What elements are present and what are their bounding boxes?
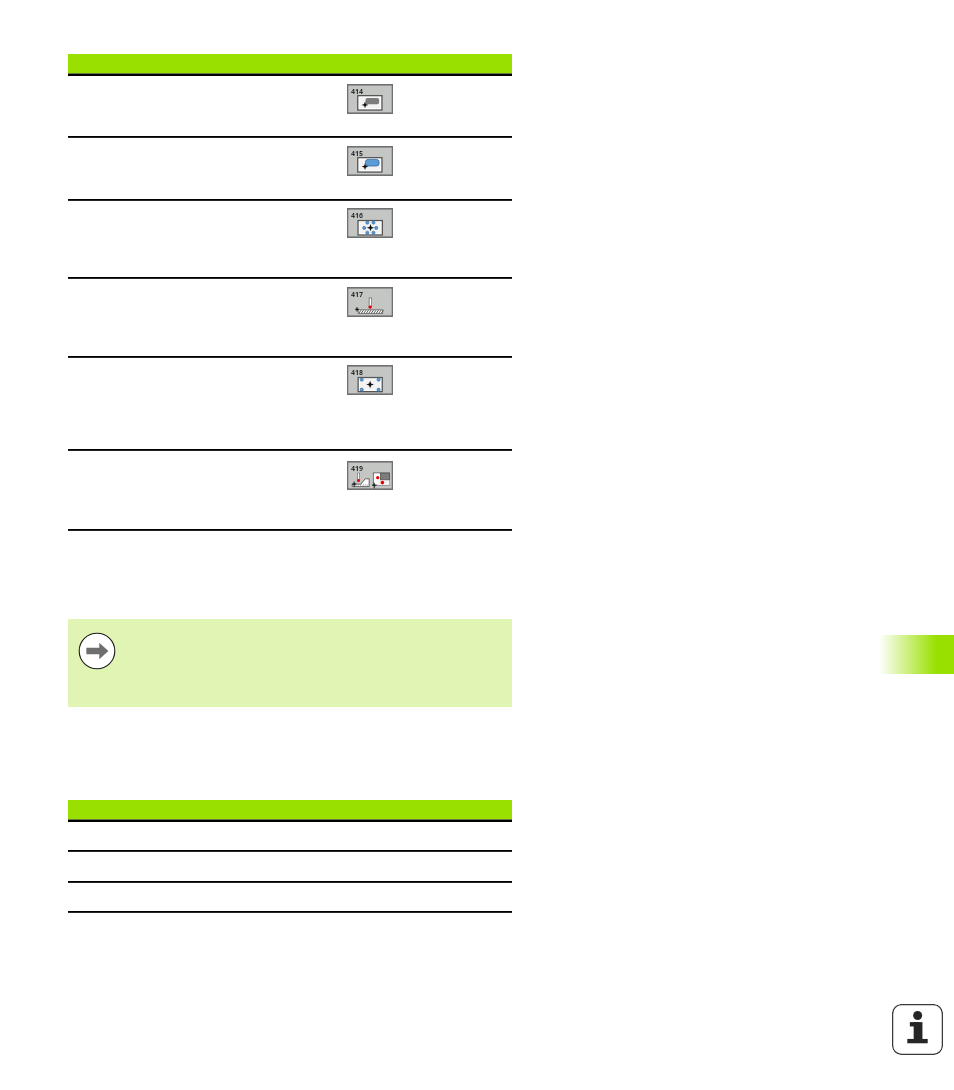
staticText: 417 (351, 290, 364, 300)
staticText: 416 (351, 211, 364, 221)
button[interactable]: Section tab (879, 635, 954, 674)
button[interactable]: Note (78, 632, 116, 670)
staticText: 419 (351, 464, 364, 474)
button[interactable]: Information (892, 1004, 943, 1055)
staticText: 415 (351, 149, 364, 159)
button[interactable]: Cycle 414 (347, 84, 393, 114)
button[interactable]: Cycle 415 (347, 146, 393, 176)
staticText: 418 (351, 368, 364, 378)
button[interactable]: Cycle 417 (347, 287, 393, 317)
button[interactable]: Cycle 416 (347, 208, 393, 238)
button[interactable]: Cycle 418 (347, 365, 393, 395)
button[interactable]: Cycle 419 (347, 461, 393, 490)
staticText: 414 (351, 87, 364, 97)
